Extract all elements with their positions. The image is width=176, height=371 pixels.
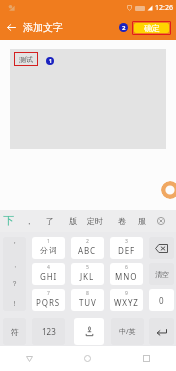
button[interactable]: 9 bbox=[110, 289, 143, 311]
staticText: 添加文字 bbox=[23, 21, 63, 34]
button[interactable]: Enter bbox=[149, 318, 174, 345]
staticText: 2 bbox=[122, 24, 126, 32]
button[interactable]: Back bbox=[0, 15, 22, 40]
button[interactable]: ， bbox=[22, 210, 36, 232]
button[interactable]: 5 bbox=[71, 263, 104, 285]
staticText: DEF bbox=[118, 245, 136, 256]
staticText: 8 bbox=[86, 290, 89, 297]
staticText: 了 bbox=[46, 216, 54, 226]
staticText: 清空 bbox=[155, 270, 169, 279]
staticText: 5 bbox=[86, 264, 89, 271]
button[interactable]: 1 bbox=[32, 237, 65, 259]
staticText: 版 bbox=[69, 216, 77, 226]
staticText: 0 bbox=[159, 295, 164, 306]
staticText: 123 bbox=[42, 326, 56, 337]
button[interactable]: Back bbox=[0, 346, 58, 371]
staticText: ， bbox=[12, 261, 18, 269]
button[interactable]: Close keyboard bbox=[152, 210, 170, 232]
button[interactable]: 123 bbox=[32, 318, 65, 345]
button[interactable]: Space bbox=[74, 318, 104, 345]
staticText: ABC bbox=[78, 245, 97, 256]
button[interactable]: Home bbox=[58, 346, 117, 371]
staticText: TUV bbox=[79, 297, 97, 308]
staticText: JKL bbox=[80, 271, 95, 282]
button[interactable]: 中/英 bbox=[111, 318, 144, 345]
staticText: 分词 bbox=[40, 245, 58, 255]
staticText: 卷 bbox=[118, 216, 126, 226]
staticText: 4 bbox=[47, 264, 50, 271]
button[interactable]: 7 bbox=[32, 289, 65, 311]
button[interactable]: 符 bbox=[3, 318, 26, 345]
staticText: 中/英 bbox=[119, 327, 136, 337]
staticText: 1 bbox=[49, 58, 52, 65]
staticText: 服 bbox=[138, 216, 146, 226]
button[interactable]: Backspace bbox=[149, 237, 174, 259]
staticText: GHI bbox=[40, 271, 58, 282]
button[interactable]: 了 bbox=[43, 210, 57, 232]
staticText: 下 bbox=[3, 213, 14, 227]
staticText: 12:26 bbox=[155, 3, 173, 13]
button[interactable]: Hide keyboard bbox=[1, 210, 18, 232]
button[interactable]: 0 bbox=[149, 289, 174, 311]
staticText: 1 bbox=[47, 238, 50, 245]
staticText: 6 bbox=[125, 264, 128, 271]
staticText: 符 bbox=[11, 327, 19, 337]
staticText: 7 bbox=[47, 290, 50, 297]
button[interactable]: 清空 bbox=[149, 263, 174, 285]
staticText: 9 bbox=[125, 290, 128, 297]
staticText: PQRS bbox=[36, 297, 61, 308]
button[interactable]: 6 bbox=[110, 263, 143, 285]
button[interactable]: 3 bbox=[110, 237, 143, 259]
button[interactable]: 服 bbox=[135, 210, 149, 232]
button[interactable]: 确定 bbox=[134, 23, 169, 33]
staticText: 确定 bbox=[144, 23, 160, 33]
button[interactable]: 2 bbox=[71, 237, 104, 259]
staticText: WXYZ bbox=[114, 297, 139, 308]
button[interactable]: Rotate bbox=[161, 181, 176, 199]
staticText: 测试 bbox=[19, 55, 33, 64]
staticText: 2 bbox=[86, 238, 89, 245]
staticText: ' bbox=[14, 240, 16, 250]
staticText: 定时 bbox=[87, 216, 103, 226]
staticText: ， bbox=[25, 216, 33, 226]
button[interactable]: 版 bbox=[66, 210, 80, 232]
button[interactable]: 卷 bbox=[115, 210, 129, 232]
button[interactable]: 定时 bbox=[85, 210, 105, 232]
staticText: MNO bbox=[115, 271, 138, 282]
button[interactable]: Punctuation bbox=[3, 237, 26, 311]
button[interactable]: 4 bbox=[32, 263, 65, 285]
button[interactable]: 测试 bbox=[14, 52, 38, 66]
staticText: 3 bbox=[125, 238, 128, 245]
button[interactable]: 8 bbox=[71, 289, 104, 311]
button[interactable]: Recents bbox=[117, 346, 176, 371]
staticText: ？ bbox=[11, 279, 18, 288]
staticText: ！ bbox=[11, 299, 18, 308]
